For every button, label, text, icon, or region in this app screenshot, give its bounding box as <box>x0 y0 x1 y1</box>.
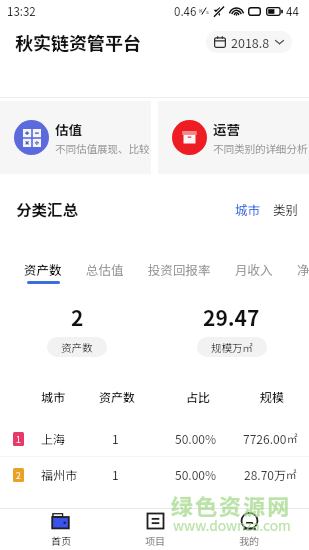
staticText: 分类汇总 <box>16 198 79 220</box>
staticText: 资产数 <box>99 388 136 405</box>
staticText: 29.47 <box>203 302 260 332</box>
staticText: 50.00% <box>175 466 217 483</box>
staticText: 类别 <box>273 200 299 218</box>
staticText: www.downza.com <box>173 515 291 535</box>
staticText: 城市 <box>41 388 66 405</box>
button[interactable]: 月收入 <box>223 232 285 292</box>
staticText: 28.70万 <box>244 466 286 483</box>
button[interactable]: 运营 <box>158 101 309 174</box>
staticText: ㎡ <box>287 430 298 446</box>
staticText: 规模 <box>260 388 285 405</box>
staticText: 上海 <box>41 430 66 447</box>
button[interactable]: 2 <box>0 457 309 492</box>
staticText: 总估值 <box>86 260 124 278</box>
staticText: 估值 <box>55 119 82 139</box>
staticText: 月收入 <box>235 260 273 278</box>
staticText: 2018.8 <box>231 33 270 51</box>
staticText: 规模万㎡ <box>211 340 253 355</box>
button[interactable]: 类别 <box>270 195 302 223</box>
staticText: 占比 <box>186 388 211 405</box>
staticText: s <box>206 7 209 16</box>
staticText: 1 <box>112 430 119 447</box>
staticText: 资产数 <box>24 260 62 278</box>
button[interactable]: 1 <box>0 421 309 456</box>
button[interactable]: 城市 <box>232 195 264 223</box>
staticText: 投资回报率 <box>148 260 211 278</box>
staticText: 7726.00 <box>243 430 287 447</box>
staticText: 项目 <box>145 533 165 547</box>
staticText: 资产数 <box>61 340 93 355</box>
staticText: 1 <box>112 466 119 483</box>
staticText: 秋实链资管平台 <box>15 29 141 55</box>
staticText: ㎡ <box>286 466 297 482</box>
staticText: 50.00% <box>175 430 217 447</box>
staticText: 福州市 <box>41 466 78 483</box>
button[interactable]: 估值 <box>0 101 151 174</box>
staticText: 我的 <box>239 533 259 547</box>
staticText: 首页 <box>51 533 71 547</box>
button[interactable]: 净 <box>285 232 309 292</box>
staticText: 不同类别的详细分析 <box>213 141 308 156</box>
button[interactable]: 资产数 <box>12 232 74 292</box>
button[interactable]: 项目 <box>108 509 202 550</box>
staticText: 2 <box>16 469 21 481</box>
staticText: 0.46 <box>174 3 197 20</box>
staticText: 2 <box>71 302 84 332</box>
button[interactable]: 我的 <box>202 509 296 550</box>
staticText: 44 <box>286 3 299 20</box>
staticText: K <box>199 6 203 15</box>
button[interactable]: 总估值 <box>74 232 136 292</box>
staticText: 城市 <box>235 200 261 218</box>
button[interactable]: 2018.8 <box>206 31 292 53</box>
staticText: 运营 <box>213 119 240 139</box>
staticText: 不同估值展现、比较 <box>55 141 150 156</box>
button[interactable]: 投资回报率 <box>136 232 223 292</box>
staticText: 绿色资源网 <box>171 489 292 521</box>
button[interactable]: 首页 <box>13 509 108 550</box>
staticText: 1 <box>16 433 21 445</box>
staticText: 13:32 <box>7 3 36 20</box>
